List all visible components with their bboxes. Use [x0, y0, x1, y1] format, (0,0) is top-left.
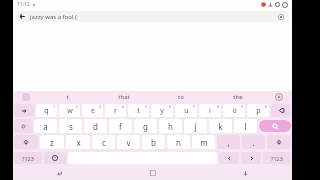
button[interactable]: Recents	[199, 166, 292, 180]
staticText: h	[168, 121, 173, 132]
button[interactable]: Back	[16, 11, 289, 22]
staticText: d	[93, 121, 98, 132]
button[interactable]: x	[66, 135, 90, 149]
staticText: that	[118, 93, 130, 101]
staticText: t	[66, 93, 69, 101]
staticText: u	[184, 106, 189, 116]
staticText: n	[176, 137, 181, 148]
staticText: 9	[241, 104, 244, 109]
button[interactable]: Search	[259, 120, 291, 132]
button[interactable]: h	[159, 119, 182, 133]
staticText: 3	[99, 104, 102, 109]
button[interactable]: v	[117, 135, 140, 149]
staticText: ?123	[22, 155, 34, 162]
button[interactable]: t	[39, 91, 95, 103]
staticText: 1	[53, 104, 56, 109]
staticText: r	[114, 106, 117, 116]
staticText: to	[178, 93, 184, 101]
button[interactable]: n	[167, 135, 190, 149]
staticText: ,	[227, 137, 230, 148]
staticText: w	[67, 106, 73, 116]
staticText: .	[252, 137, 255, 148]
button[interactable]: Right	[241, 152, 261, 164]
button[interactable]: k	[209, 119, 232, 133]
staticText: e	[91, 106, 95, 116]
button[interactable]: b	[142, 135, 165, 149]
staticText: x	[76, 137, 81, 148]
staticText: 11:12	[17, 1, 30, 8]
button[interactable]: Back	[13, 166, 106, 180]
button[interactable]: Shift right	[267, 135, 291, 149]
staticText: t	[137, 106, 140, 116]
button[interactable]: w	[59, 104, 80, 117]
staticText: s	[69, 121, 73, 132]
button[interactable]: ?123	[14, 152, 42, 164]
button[interactable]: .	[242, 135, 265, 149]
staticText: q	[44, 106, 49, 116]
button[interactable]: Caps	[14, 119, 32, 133]
staticText: i	[209, 106, 211, 116]
button[interactable]: Shift	[14, 135, 38, 149]
button[interactable]: Emoji	[44, 152, 66, 164]
button[interactable]: f	[109, 119, 132, 133]
staticText: o	[232, 106, 237, 116]
staticText: b	[151, 137, 156, 148]
button[interactable]: d	[84, 119, 107, 133]
staticText: l	[244, 121, 247, 132]
staticText: c	[102, 137, 106, 148]
button[interactable]: t	[128, 104, 149, 117]
staticText: 2	[76, 104, 79, 109]
staticText: f	[119, 121, 122, 132]
button[interactable]: q	[36, 104, 57, 117]
button[interactable]: that	[95, 91, 152, 103]
button[interactable]: z	[40, 135, 64, 149]
staticText: 8	[217, 104, 220, 109]
staticText: v	[126, 137, 131, 148]
staticText: 0	[265, 104, 268, 109]
staticText: the	[233, 93, 243, 101]
button[interactable]: g	[134, 119, 157, 133]
button[interactable]: Home	[106, 166, 199, 180]
staticText: jazzy was a fool (	[30, 13, 77, 21]
staticText: a	[43, 121, 48, 132]
staticText: j	[194, 121, 197, 132]
staticText: z	[50, 137, 54, 148]
button[interactable]: the	[209, 91, 266, 103]
staticText: k	[218, 121, 223, 132]
button[interactable]: u	[175, 104, 197, 117]
staticText: g	[143, 121, 148, 132]
button[interactable]: s	[59, 119, 82, 133]
button[interactable]: Tab	[14, 104, 34, 117]
button[interactable]: m	[192, 135, 215, 149]
button[interactable]: p	[247, 104, 269, 117]
button[interactable]: a	[34, 119, 57, 133]
staticText: 4	[122, 104, 125, 109]
button[interactable]: c	[92, 135, 115, 149]
staticText: m	[200, 137, 208, 148]
button[interactable]: ?123	[263, 152, 291, 164]
button[interactable]: Left	[219, 152, 239, 164]
button[interactable]: to	[152, 91, 209, 103]
button[interactable]: i	[199, 104, 221, 117]
button[interactable]: Backspace	[271, 104, 291, 117]
staticText: ?123	[271, 155, 283, 162]
button[interactable]: y	[151, 104, 173, 117]
button[interactable]: More options	[266, 91, 292, 103]
staticText: 7	[193, 104, 196, 109]
button[interactable]: Clear	[275, 11, 287, 22]
staticText: y	[160, 106, 164, 116]
button[interactable]: l	[234, 119, 257, 133]
button[interactable]: r	[105, 104, 126, 117]
button[interactable]: Keyboard settings	[13, 91, 39, 103]
staticText: p	[256, 106, 261, 116]
button[interactable]: Back	[16, 11, 28, 22]
button[interactable]: e	[82, 104, 103, 117]
staticText: 5	[145, 104, 148, 109]
button[interactable]: o	[223, 104, 245, 117]
button[interactable]: j	[184, 119, 207, 133]
button[interactable]: ,	[217, 135, 240, 149]
staticText: 6	[169, 104, 172, 109]
